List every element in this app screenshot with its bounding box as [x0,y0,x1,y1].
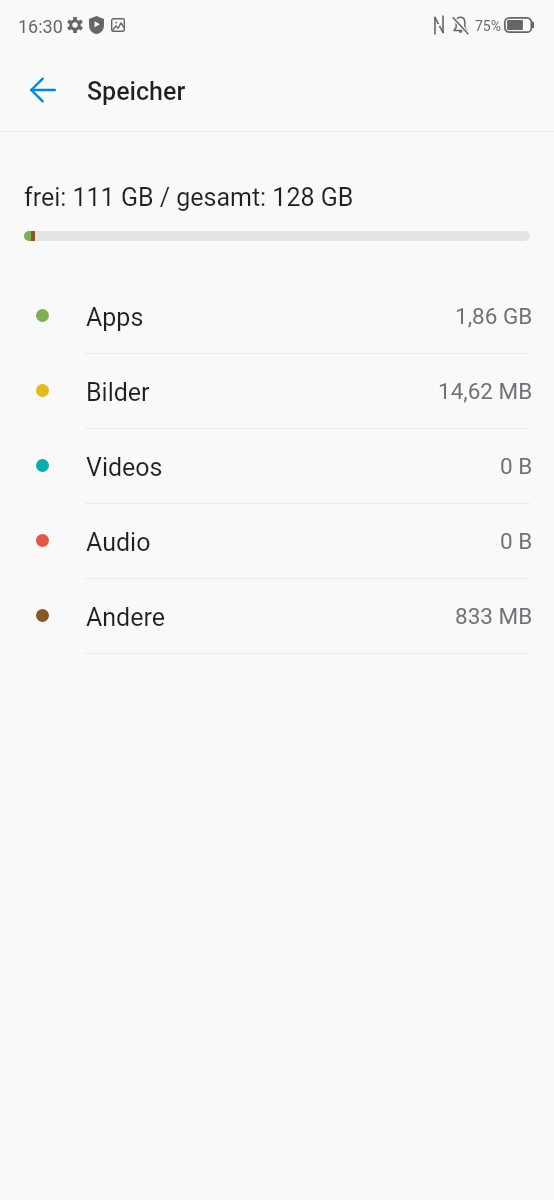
staticText: 1,86 GB [455,303,533,329]
staticText: 16:30 [18,16,63,37]
button[interactable]: Bilder [0,353,554,428]
staticText: Apps [86,303,144,332]
staticText: 0 B [500,528,533,554]
staticText: frei: 111 GB / gesamt: 128 GB [24,183,354,212]
button[interactable]: Videos [0,428,554,503]
button[interactable]: Andere [0,578,554,653]
staticText: Videos [86,453,163,482]
staticText: Bilder [86,378,150,407]
staticText: 833 MB [455,603,533,629]
staticText: Speicher [87,77,186,106]
staticText: 0 B [500,453,533,479]
staticText: 14,62 MB [438,378,533,404]
button[interactable]: Apps [0,278,554,353]
staticText: 75% [475,18,501,34]
staticText: Audio [86,528,151,557]
button[interactable]: Back [18,64,68,114]
button[interactable]: Audio [0,503,554,578]
staticText: Andere [86,603,165,632]
